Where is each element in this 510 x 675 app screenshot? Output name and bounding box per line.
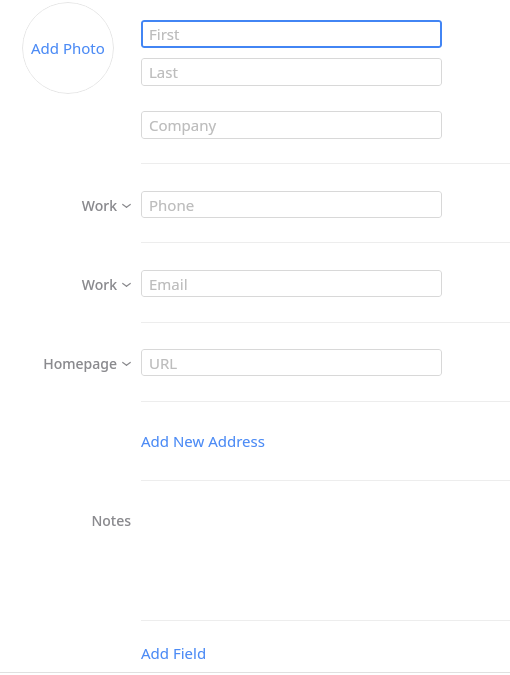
staticText: Email <box>149 274 188 294</box>
button[interactable]: Add Photo <box>22 2 114 94</box>
staticText: Homepage <box>43 354 117 373</box>
staticText: Last <box>149 62 178 82</box>
staticText: Phone <box>149 195 195 215</box>
button[interactable]: Company <box>141 111 442 139</box>
staticText: Add Field <box>141 643 207 663</box>
button[interactable]: Phone <box>141 191 442 218</box>
button[interactable]: Last <box>141 58 442 86</box>
staticText: Notes <box>91 511 131 530</box>
button[interactable]: Add New Address <box>141 428 321 454</box>
button[interactable]: Email <box>141 270 442 297</box>
button[interactable]: First <box>141 20 442 48</box>
staticText: First <box>149 24 180 44</box>
button[interactable]: URL <box>141 349 442 376</box>
staticText: Add Photo <box>31 38 105 58</box>
staticText: Work <box>81 196 117 215</box>
staticText: Company <box>149 115 217 135</box>
staticText: Work <box>81 275 117 294</box>
staticText: URL <box>149 353 178 373</box>
button[interactable]: Homepage <box>0 353 131 373</box>
button[interactable]: Work <box>0 195 131 215</box>
button[interactable]: Work <box>0 274 131 294</box>
staticText: Add New Address <box>141 431 265 451</box>
button[interactable]: Add Field <box>141 640 321 666</box>
